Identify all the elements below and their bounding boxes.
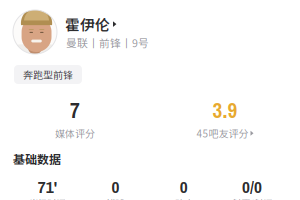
staticText: 71' xyxy=(38,175,57,198)
button[interactable]: 霍伊伦 xyxy=(65,13,116,35)
staticText: 7 xyxy=(70,96,80,125)
staticText: 3.9 xyxy=(212,96,237,125)
staticText: 0 xyxy=(111,175,119,198)
staticText: 进球 xyxy=(106,196,124,200)
button[interactable]: 3.9 xyxy=(150,96,300,138)
staticText: 助攻 xyxy=(175,196,193,200)
staticText: 基础数据 xyxy=(13,150,61,167)
button[interactable]: 7 xyxy=(0,96,150,138)
staticText: 射正/射门 xyxy=(232,196,272,200)
staticText: 媒体评分 xyxy=(55,126,95,140)
staticText: 0/0 xyxy=(242,175,262,198)
staticText: 霍伊伦 xyxy=(65,13,110,35)
staticText: 45吧友评分 xyxy=(196,126,248,140)
staticText: 曼联丨前锋丨9号 xyxy=(66,35,149,50)
staticText: 奔跑型前锋 xyxy=(23,67,73,82)
staticText: 出场时间 xyxy=(29,196,65,200)
staticText: 0 xyxy=(180,175,188,198)
